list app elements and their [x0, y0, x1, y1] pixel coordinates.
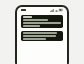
button[interactable]	[21, 31, 63, 41]
other: Wi-Fi	[55, 9, 58, 12]
button[interactable]	[21, 15, 63, 28]
other: Battery	[59, 9, 63, 11]
other: Signal strength	[50, 9, 54, 12]
